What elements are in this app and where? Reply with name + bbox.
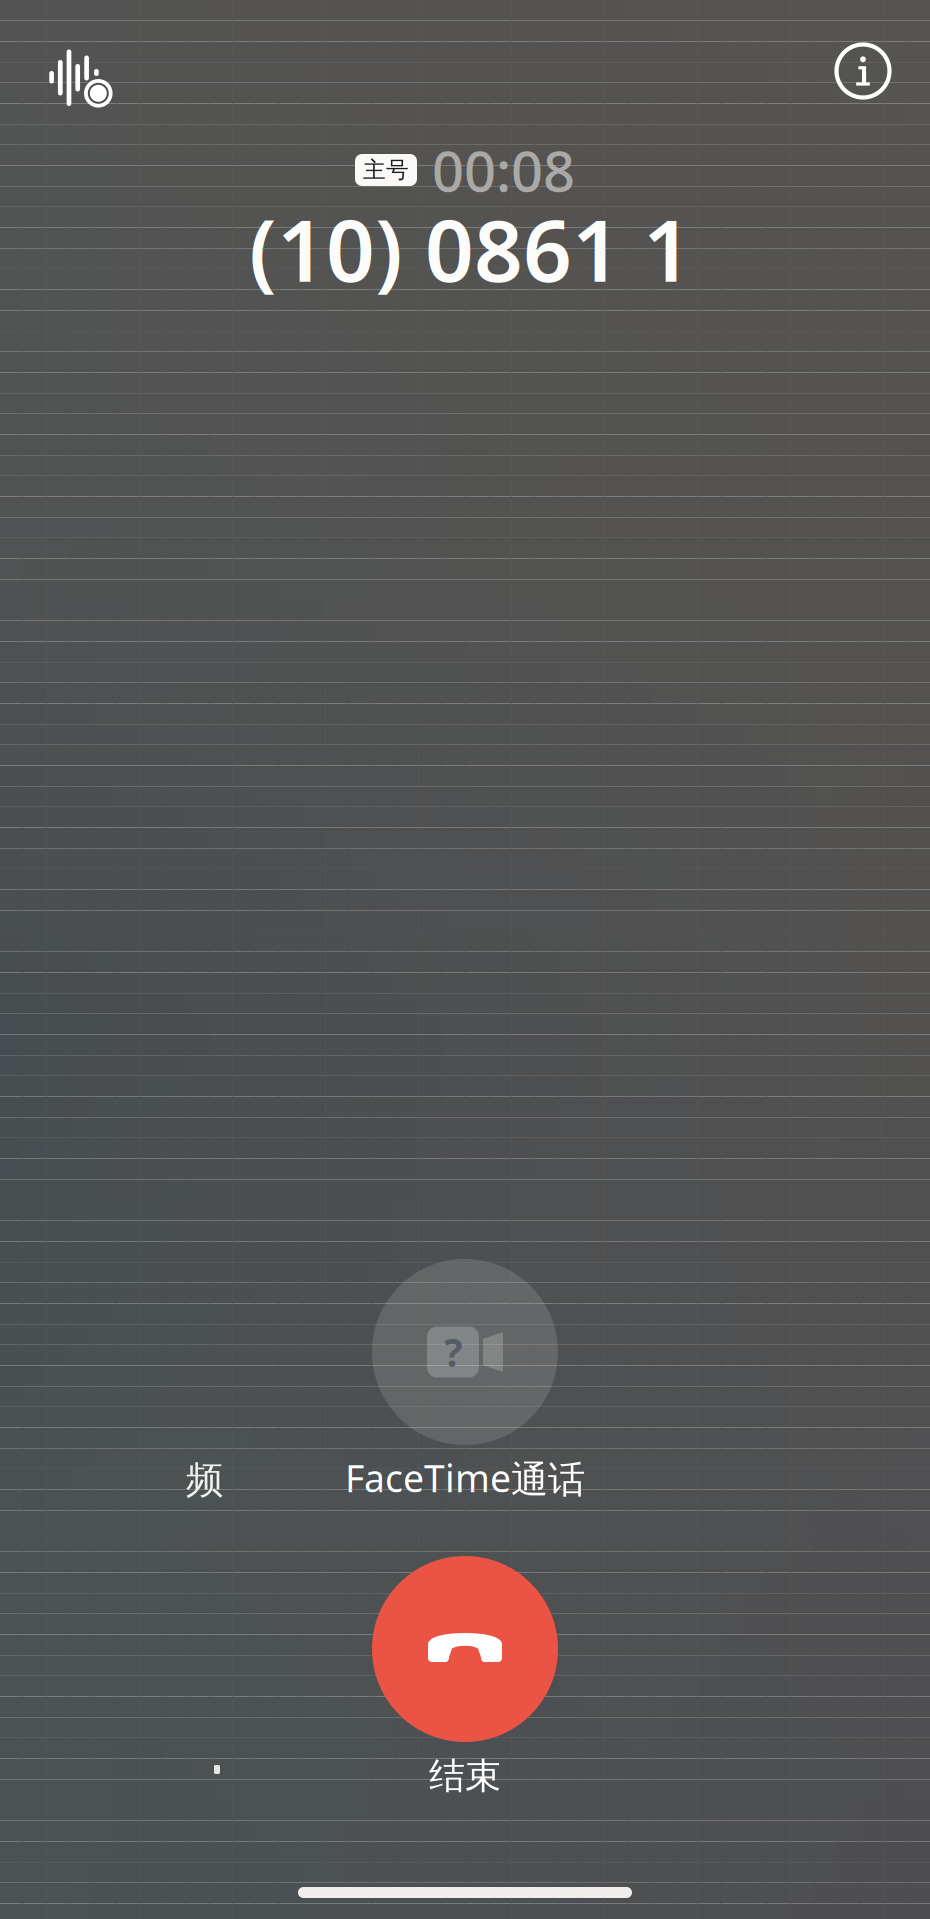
staticText: FaceTime通话	[345, 1453, 585, 1503]
button[interactable]: Call details	[836, 0, 890, 98]
staticText: ?	[444, 1326, 462, 1378]
staticText: (10) 0861 1	[249, 192, 692, 305]
button[interactable]: 结束	[265, 0, 665, 1798]
button[interactable]: ?	[205, 0, 725, 1503]
button[interactable]: Audio output	[47, 0, 111, 108]
staticText: 00:08	[432, 133, 575, 207]
staticText: 主号	[363, 156, 409, 184]
staticText: 频	[186, 1457, 223, 1503]
staticText: 结束	[429, 1754, 501, 1798]
